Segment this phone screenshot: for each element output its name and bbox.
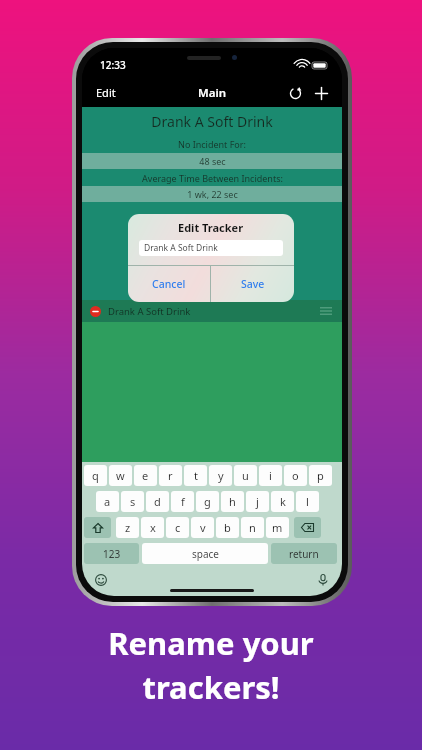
staticText: a [104,494,111,509]
staticText: Save [241,277,265,291]
button[interactable]: Edit [82,79,130,106]
button[interactable]: return [271,543,337,564]
staticText: t [194,468,198,483]
button[interactable]: Emoji [92,571,110,589]
button[interactable]: h [221,491,244,512]
staticText: p [317,468,324,483]
button[interactable]: space [142,543,268,564]
button[interactable]: z [116,517,139,538]
staticText: o [292,468,299,483]
button[interactable]: o [284,465,307,486]
staticText: x [150,520,156,535]
staticText: r [168,468,173,483]
staticText: No Incident For: [178,138,246,150]
staticText: 12:33 [100,58,126,72]
button[interactable]: Add [308,80,334,106]
staticText: b [224,520,231,535]
staticText: Drank A Soft Drink [144,242,218,254]
staticText: Rename your [108,622,314,664]
staticText: m [272,520,283,535]
staticText: Drank A Soft Drink [151,112,273,131]
button[interactable]: w [109,465,132,486]
staticText: space [192,547,219,561]
staticText: d [154,494,161,509]
button[interactable]: v [191,517,214,538]
button[interactable]: e [134,465,157,486]
button[interactable]: q [84,465,107,486]
button[interactable]: d [146,491,169,512]
button[interactable]: f [171,491,194,512]
staticText: Edit Tracker [178,220,244,235]
button[interactable]: Cancel [128,266,210,302]
button[interactable]: n [241,517,264,538]
staticText: y [218,468,224,483]
staticText: u [242,468,249,483]
staticText: Edit [96,85,116,100]
staticText: Drank A Soft Drink [108,305,191,318]
button[interactable]: b [216,517,239,538]
staticText: 123 [103,547,121,561]
button[interactable]: Shift [84,517,111,538]
staticText: z [125,520,131,535]
button[interactable]: x [141,517,164,538]
button[interactable]: Save [211,266,294,302]
staticText: Main [198,85,227,101]
button[interactable]: Dictation [314,571,332,589]
staticText: w [116,468,125,483]
button[interactable]: u [234,465,257,486]
staticText: s [130,494,136,509]
staticText: Average Time Between Incidents: [142,172,283,184]
staticText: e [142,468,149,483]
staticText: return [289,547,319,561]
staticText: 48 sec [199,155,226,167]
staticText: i [269,468,272,483]
staticText: 1 wk, 22 sec [187,188,238,200]
button[interactable]: Refresh [282,80,308,106]
staticText: g [204,494,211,509]
button[interactable]: Backspace [294,517,321,538]
button[interactable]: c [166,517,189,538]
button[interactable]: t [184,465,207,486]
button[interactable]: g [196,491,219,512]
button[interactable]: m [266,517,289,538]
button[interactable]: l [296,491,319,512]
staticText: k [280,494,286,509]
button[interactable]: j [246,491,269,512]
button[interactable]: i [259,465,282,486]
button[interactable]: Drank A Soft Drink [82,300,342,322]
button[interactable]: y [209,465,232,486]
staticText: n [249,520,256,535]
staticText: c [175,520,181,535]
staticText: j [256,494,259,509]
staticText: f [181,494,185,509]
button[interactable]: r [159,465,182,486]
button[interactable]: k [271,491,294,512]
staticText: trackers! [142,666,280,708]
button[interactable]: s [121,491,144,512]
staticText: v [200,520,206,535]
staticText: h [229,494,236,509]
button[interactable]: 123 [84,543,139,564]
staticText: Cancel [152,277,186,291]
staticText: q [92,468,99,483]
button[interactable]: a [96,491,119,512]
staticText: l [306,494,309,509]
button[interactable]: Drank A Soft Drink [139,240,283,256]
button[interactable]: p [309,465,332,486]
